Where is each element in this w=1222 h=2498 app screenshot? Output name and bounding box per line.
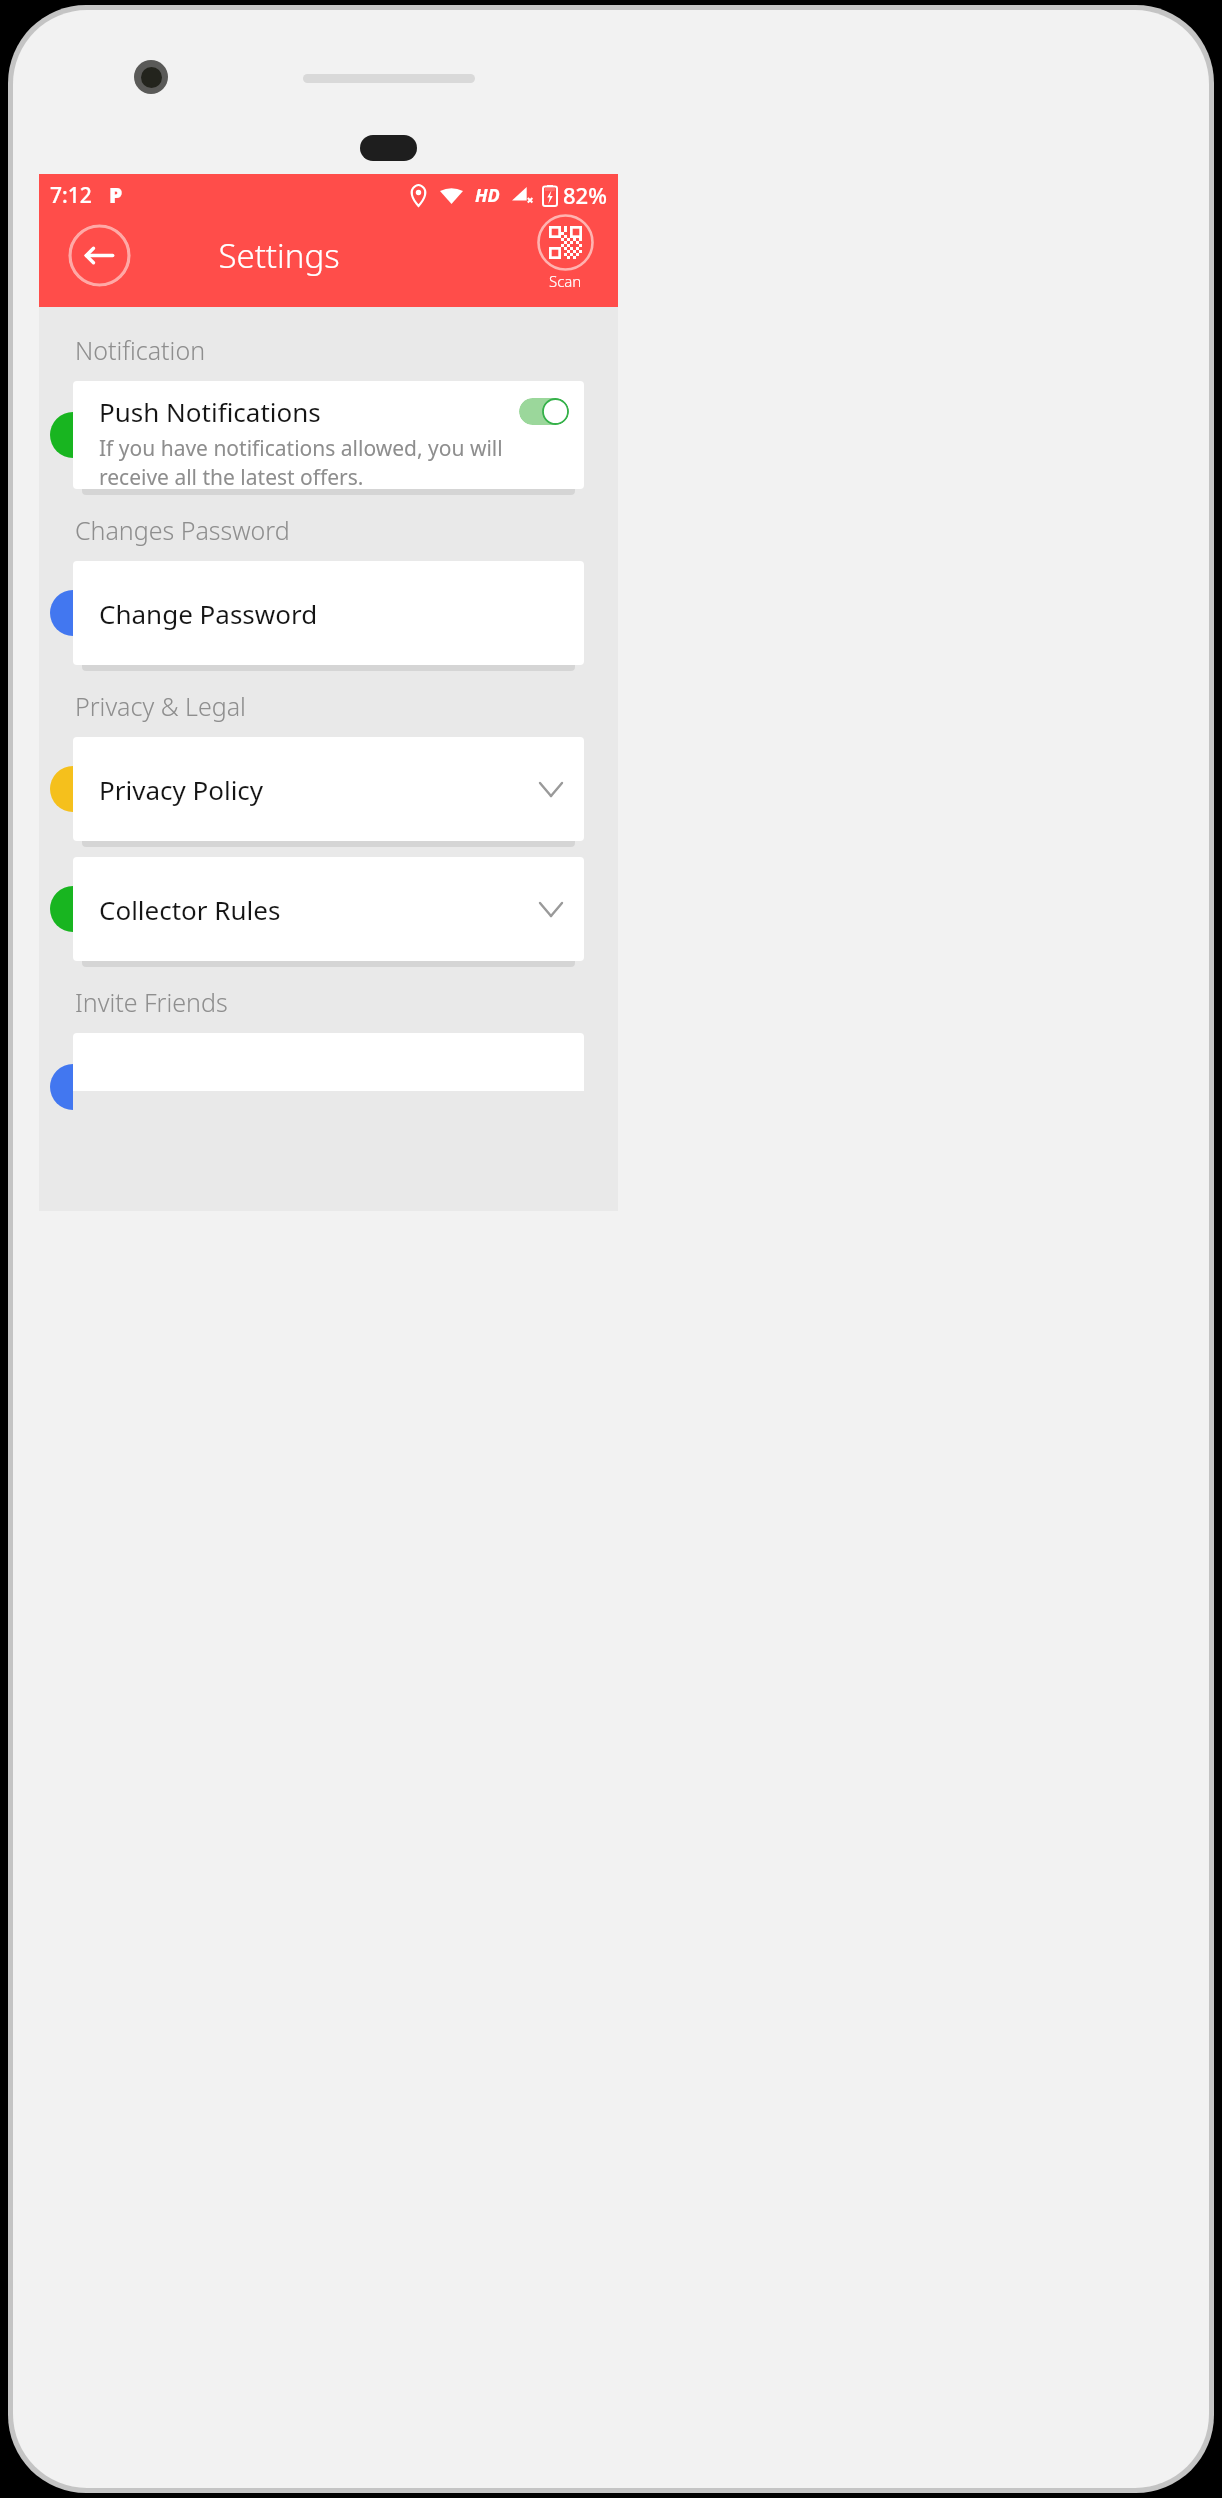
staticText: 7:12 [50,181,92,210]
staticText: Invite Friends [75,985,228,1019]
staticText: Change Password [99,596,562,631]
button[interactable]: Privacy Policy [73,737,584,841]
button[interactable]: Change Password [73,561,584,665]
staticText: Privacy & Legal [75,689,246,723]
staticText: If you have notifications allowed, you w… [99,434,569,489]
button[interactable]: Push notifications toggle [519,398,569,425]
staticText: Scan [549,271,582,291]
button[interactable]: Push Notifications [73,381,584,489]
button[interactable]: Collector Rules [73,857,584,961]
staticText: P [109,181,123,210]
staticText: 82% [563,180,607,210]
button[interactable]: Scan QR code [535,212,596,293]
staticText: Changes Password [75,513,290,547]
staticText: Collector Rules [99,892,540,927]
button[interactable]: Back [68,224,131,287]
staticText: Push Notifications [99,394,519,429]
staticText: Privacy Policy [99,772,540,807]
staticText: Notification [75,333,206,367]
staticText: Settings [189,233,369,278]
staticText: HD [475,183,500,208]
